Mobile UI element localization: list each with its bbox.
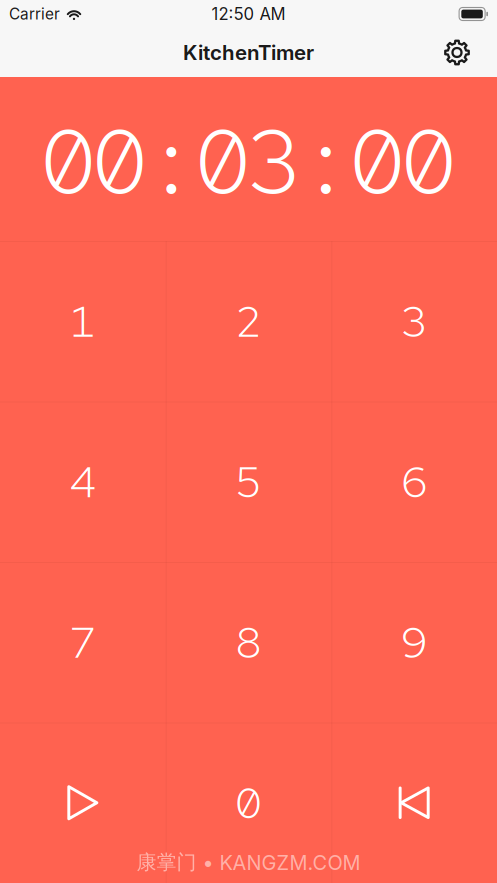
staticText: 1 bbox=[70, 293, 96, 350]
staticText: 3 bbox=[401, 293, 427, 350]
button[interactable] bbox=[0, 722, 166, 883]
button[interactable] bbox=[331, 722, 497, 883]
staticText: 2 bbox=[235, 293, 261, 350]
staticText: 康掌门 • KANGZM.COM bbox=[136, 850, 360, 875]
staticText: KitchenTimer bbox=[183, 40, 314, 65]
button[interactable]: 8 bbox=[166, 562, 331, 722]
staticText: 6 bbox=[401, 453, 427, 510]
staticText: 8 bbox=[235, 614, 261, 671]
button[interactable]: 6 bbox=[331, 401, 497, 562]
button[interactable]: 7 bbox=[0, 562, 166, 722]
staticText: 12:50 AM bbox=[211, 4, 285, 24]
button[interactable]: 3 bbox=[331, 241, 497, 401]
staticText: 00:03:00 bbox=[42, 103, 455, 220]
staticText: 7 bbox=[70, 614, 96, 671]
button[interactable]: 1 bbox=[0, 241, 166, 401]
button[interactable]: 0 bbox=[166, 722, 331, 883]
staticText: 4 bbox=[70, 453, 96, 510]
staticText: 0 bbox=[235, 774, 261, 831]
button[interactable]: 2 bbox=[166, 241, 331, 401]
staticText: Carrier bbox=[9, 5, 60, 23]
button[interactable]: Settings bbox=[435, 30, 479, 74]
button[interactable]: 5 bbox=[166, 401, 331, 562]
staticText: 5 bbox=[235, 453, 261, 510]
button[interactable]: 4 bbox=[0, 401, 166, 562]
staticText: 9 bbox=[401, 614, 427, 671]
button[interactable]: 9 bbox=[331, 562, 497, 722]
